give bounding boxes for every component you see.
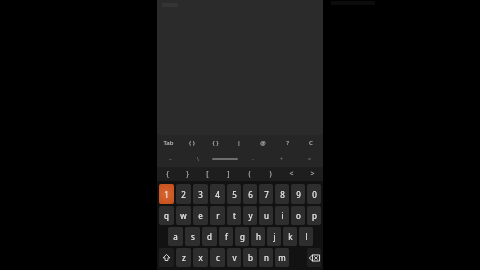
button[interactable]: [ [197,167,218,181]
staticText: s [191,231,195,242]
button[interactable]: Toolbar | [227,135,251,151]
button[interactable]: q [159,206,174,225]
staticText: r [216,210,220,221]
staticText: ? [286,139,289,147]
button[interactable]: k [283,227,297,246]
button[interactable]: Backspace [307,248,321,267]
button[interactable]: Toolbar Tab [157,135,180,151]
button[interactable]: r [210,206,225,225]
button[interactable]: 5 [227,184,241,204]
button[interactable]: x [193,248,208,267]
staticText: i [281,210,284,221]
button[interactable]: a [168,227,183,246]
staticText: 5 [232,189,237,200]
button[interactable]: Move toolbar [211,151,239,167]
button[interactable]: w [176,206,191,225]
staticText: 1 [164,189,169,200]
staticText: h [256,231,261,242]
button[interactable]: Toolbar ~ [157,151,184,167]
staticText: w [180,210,187,221]
button[interactable]: z [176,248,191,267]
button[interactable]: 7 [259,184,273,204]
staticText: a [173,231,178,242]
button[interactable]: p [307,206,321,225]
button[interactable]: o [291,206,305,225]
button[interactable]: m [275,248,289,267]
staticText: 8 [280,189,285,200]
button[interactable]: Toolbar { } [203,135,227,151]
staticText: n [264,252,269,263]
button[interactable]: > [302,167,323,181]
staticText: j [273,231,276,242]
button[interactable]: f [219,227,233,246]
staticText: 2 [181,189,186,200]
staticText: q [164,210,169,221]
button[interactable]: { [157,167,177,181]
staticText: d [207,231,212,242]
staticText: k [288,231,293,242]
button[interactable]: h [251,227,265,246]
staticText: Tab [163,139,174,147]
staticText: u [264,210,269,221]
button[interactable]: c [210,248,225,267]
staticText: \ [197,156,199,163]
button[interactable]: Toolbar ? [275,135,299,151]
staticText: f [225,231,228,242]
button[interactable]: d [202,227,217,246]
button[interactable]: 4 [210,184,225,204]
staticText: c [216,252,220,263]
staticText: } [186,169,189,179]
staticText: v [232,252,237,263]
button[interactable]: Toolbar \ [184,151,211,167]
button[interactable]: ] [218,167,239,181]
button[interactable]: 6 [243,184,257,204]
button[interactable]: b [243,248,257,267]
staticText: o [296,210,301,221]
button[interactable]: y [243,206,257,225]
button[interactable]: 8 [275,184,289,204]
button[interactable]: Toolbar ( ) [180,135,203,151]
staticText: p [312,210,317,221]
button[interactable]: i [275,206,289,225]
staticText: | [237,139,241,147]
button[interactable]: ) [260,167,281,181]
button[interactable]: v [227,248,241,267]
button[interactable]: n [259,248,273,267]
button[interactable]: 0 [307,184,321,204]
staticText: t [233,210,236,221]
button[interactable]: t [227,206,241,225]
button[interactable]: } [177,167,197,181]
button[interactable]: Toolbar @ [251,135,275,151]
staticText: b [248,252,253,263]
button[interactable]: Toolbar + [267,151,295,167]
button[interactable]: e [193,206,208,225]
staticText: @ [260,139,266,147]
button[interactable]: Toolbar = [295,151,323,167]
staticText: ) [269,169,272,179]
button[interactable]: 9 [291,184,305,204]
button[interactable]: Shift [159,248,174,267]
staticText: < [289,169,294,179]
button[interactable]: 3 [193,184,208,204]
staticText: { } [212,139,219,147]
staticText: x [198,252,203,263]
button[interactable]: j [267,227,281,246]
button[interactable]: Toolbar C [299,135,323,151]
staticText: 6 [248,189,253,200]
button[interactable]: 1 [159,184,174,204]
staticText: { [166,169,169,179]
staticText: l [305,231,308,242]
staticText: 7 [264,189,269,200]
button[interactable]: 2 [176,184,191,204]
button[interactable]: s [185,227,200,246]
button[interactable]: ( [239,167,260,181]
staticText: y [248,210,253,221]
button[interactable]: < [281,167,302,181]
staticText: m [278,252,286,263]
button[interactable]: u [259,206,273,225]
staticText: 9 [296,189,301,200]
button[interactable]: l [299,227,313,246]
button[interactable]: g [235,227,249,246]
staticText: = [308,156,311,163]
